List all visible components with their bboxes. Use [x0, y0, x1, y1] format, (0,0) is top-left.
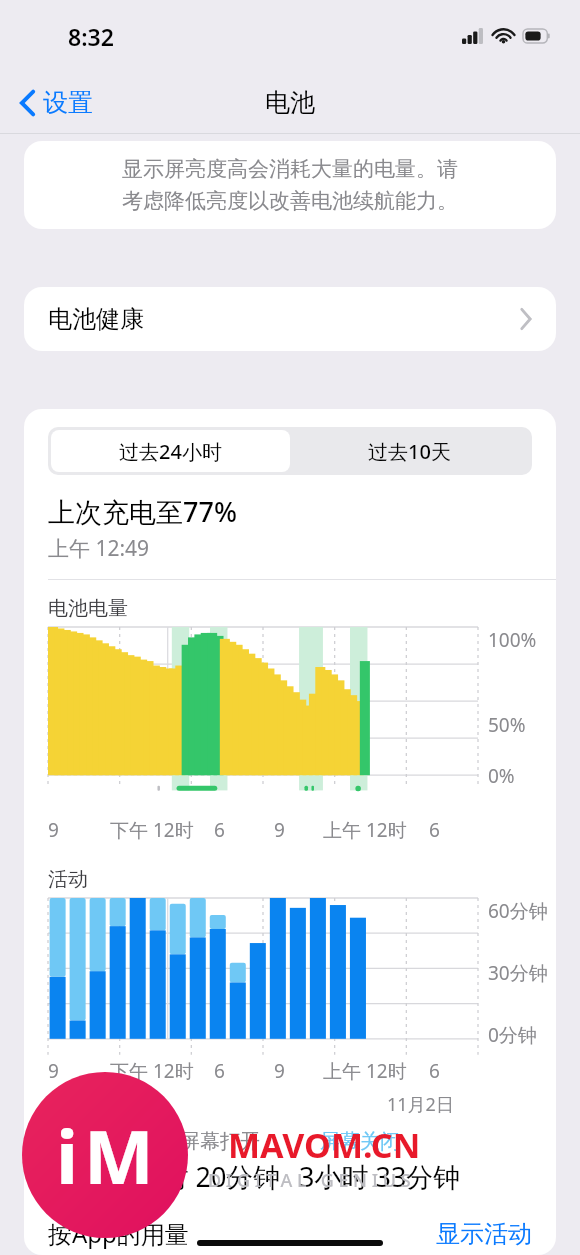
button[interactable]: 电池健康 [24, 287, 556, 351]
staticText: 3小时 33分钟 [299, 1158, 461, 1195]
staticText: 过去24小时 [119, 438, 222, 465]
staticText: 活动 [48, 867, 88, 892]
staticText: 设置 [43, 87, 93, 118]
staticText: 电池电量 [48, 596, 128, 621]
staticText: 上午 12时 [323, 1058, 407, 1084]
staticText: 6 [214, 1058, 225, 1084]
staticText: 11月2日 [387, 1092, 454, 1117]
staticText: 显示屏亮度高会消耗大量的电量。请 [122, 156, 458, 182]
staticText: i [56, 1105, 79, 1206]
staticText: 屏幕关闭 [320, 1129, 400, 1154]
staticText: 0分钟 [488, 1022, 537, 1048]
staticText: 9 [48, 817, 59, 843]
staticText: 6 [429, 817, 440, 843]
staticText: 下午 12时 [110, 1058, 194, 1084]
button[interactable]: 过去24小时 [51, 430, 290, 472]
staticText: 0% [488, 763, 515, 789]
staticText: 8:32 [68, 21, 114, 52]
button[interactable]: 过去10天 [290, 430, 529, 472]
staticText: D I G I T A L G E N I U S [208, 1168, 411, 1193]
staticText: 50% [488, 712, 526, 738]
staticText: 屏幕打开 [180, 1129, 260, 1154]
staticText: 电池 [265, 87, 315, 118]
staticText: 上午 12时 [323, 817, 407, 843]
staticText: 过去10天 [368, 438, 451, 465]
staticText: 60分钟 [488, 898, 548, 924]
staticText: M [84, 1105, 154, 1206]
staticText: 6 [429, 1058, 440, 1084]
staticText: 30分钟 [488, 960, 548, 986]
staticText: 6小时 20分钟 [119, 1158, 281, 1195]
staticText: 9 [274, 1058, 285, 1084]
staticText: 6 [214, 817, 225, 843]
staticText: 电池健康 [48, 304, 144, 334]
staticText: 11月1日 [48, 1092, 115, 1117]
staticText: MAVOM.CN [228, 1122, 421, 1168]
staticText: 上午 12:49 [48, 534, 150, 563]
staticText: 考虑降低亮度以改善电池续航能力。 [122, 188, 458, 214]
button[interactable]: 按App的用量 [48, 1217, 189, 1250]
staticText: 下午 12时 [110, 817, 194, 843]
staticText: 100% [488, 627, 537, 653]
staticText: 上次充电至77% [48, 493, 237, 530]
button[interactable]: 显示活动 [436, 1219, 532, 1249]
button[interactable]: 设置 [14, 83, 99, 122]
staticText: 9 [274, 817, 285, 843]
staticText: 9 [48, 1058, 59, 1084]
